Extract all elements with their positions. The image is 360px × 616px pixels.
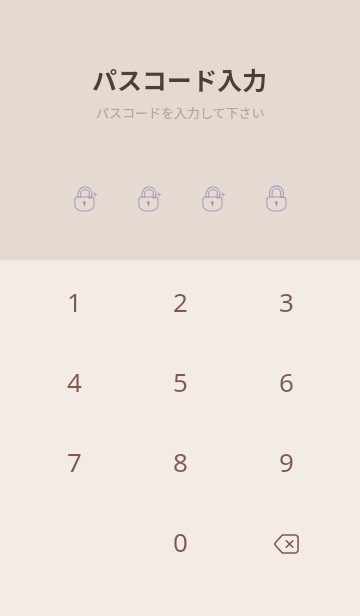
other: Passcode digit entered bbox=[138, 185, 165, 212]
button[interactable]: 1 bbox=[21, 261, 127, 341]
staticText: パスコードを入力して下さい bbox=[96, 103, 265, 122]
button[interactable]: 0 bbox=[127, 501, 233, 581]
staticText: 7 bbox=[67, 444, 82, 479]
staticText: 2 bbox=[173, 284, 188, 319]
button[interactable]: 7 bbox=[21, 421, 127, 501]
staticText: 9 bbox=[279, 444, 294, 479]
button[interactable]: 5 bbox=[127, 341, 233, 421]
button[interactable]: 9 bbox=[233, 421, 339, 501]
staticText: パスコード入力 bbox=[92, 61, 268, 97]
staticText: 0 bbox=[173, 524, 188, 559]
button[interactable]: 2 bbox=[127, 261, 233, 341]
button[interactable]: 6 bbox=[233, 341, 339, 421]
staticText: 3 bbox=[279, 284, 294, 319]
other: Passcode digit entered bbox=[74, 185, 101, 212]
button[interactable]: 4 bbox=[21, 341, 127, 421]
other: Passcode digit empty bbox=[266, 185, 293, 212]
button[interactable]: 3 bbox=[233, 261, 339, 341]
staticText: 6 bbox=[279, 364, 294, 399]
staticText: 1 bbox=[67, 284, 82, 319]
button[interactable]: 8 bbox=[127, 421, 233, 501]
staticText: 4 bbox=[67, 364, 82, 399]
other: Passcode digit entered bbox=[202, 185, 229, 212]
other: Delete bbox=[273, 534, 299, 554]
button[interactable]: Delete bbox=[233, 501, 339, 581]
staticText: 8 bbox=[173, 444, 188, 479]
staticText: 5 bbox=[173, 364, 188, 399]
